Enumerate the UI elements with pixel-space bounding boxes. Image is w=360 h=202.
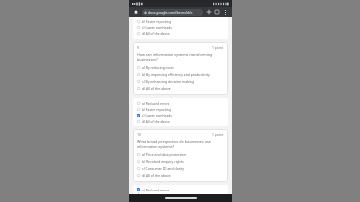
button[interactable]: d) All of the above (137, 172, 224, 179)
staticText: a) Reduced errors (142, 101, 170, 105)
button[interactable]: b) Resolved enquiry rights (137, 158, 224, 165)
button[interactable]: Home (132, 8, 140, 16)
staticText: d) All of the above (142, 31, 170, 35)
staticText: c) By enhancing decision making (142, 79, 194, 84)
staticText: 10 (137, 132, 142, 137)
staticText: What broad perspective do businesses use… (137, 139, 224, 149)
button[interactable]: c) Lower overheads (137, 24, 224, 30)
staticText: b) Faster reporting (142, 107, 171, 111)
staticText: b) By improving efficiency and productiv… (142, 72, 210, 77)
button[interactable]: c) By enhancing decision making (137, 78, 224, 85)
button[interactable]: a) Reduced errors (137, 187, 224, 192)
staticText: 1 point (212, 45, 224, 50)
staticText: b) Resolved enquiry rights (142, 159, 184, 164)
staticText: 9 (137, 45, 140, 50)
button[interactable]: d) All of the above (137, 30, 224, 36)
button[interactable]: b) Faster reporting (137, 18, 224, 24)
staticText: d) All of the above (142, 173, 171, 178)
button[interactable]: a) By reducing costs (137, 64, 224, 71)
staticText: docs.google.com/forms/d/e (148, 10, 193, 15)
staticText: a) By reducing costs (142, 65, 174, 70)
button[interactable]: Tabs (213, 8, 221, 16)
staticText: a) Price and data protection (142, 152, 186, 157)
button[interactable]: c) Lower overheads (137, 112, 224, 118)
button[interactable]: d) All of the above (137, 118, 224, 124)
button[interactable]: Home gesture (165, 197, 197, 199)
button[interactable]: More options (221, 8, 229, 16)
button[interactable]: docs.google.com/forms/d/e (142, 9, 203, 16)
button[interactable]: c) Consumer ID and clarity (137, 165, 224, 172)
staticText: How can information systems transforming… (137, 52, 224, 62)
staticText: 1 point (212, 132, 224, 137)
staticText: a) Reduced errors (142, 188, 170, 191)
staticText: b) Faster reporting (142, 19, 171, 23)
staticText: d) All of the above (142, 86, 171, 91)
staticText: c) Lower overheads (142, 113, 172, 117)
button[interactable]: b) Faster reporting (137, 106, 224, 112)
button[interactable]: New tab (205, 8, 213, 16)
button[interactable]: a) Reduced errors (137, 100, 224, 106)
staticText: d) All of the above (142, 119, 170, 123)
button[interactable]: a) Price and data protection (137, 151, 224, 158)
button[interactable]: d) All of the above (137, 85, 224, 92)
staticText: c) Lower overheads (142, 25, 172, 29)
staticText: c) Consumer ID and clarity (142, 166, 185, 171)
button[interactable]: b) By improving efficiency and productiv… (137, 71, 224, 78)
